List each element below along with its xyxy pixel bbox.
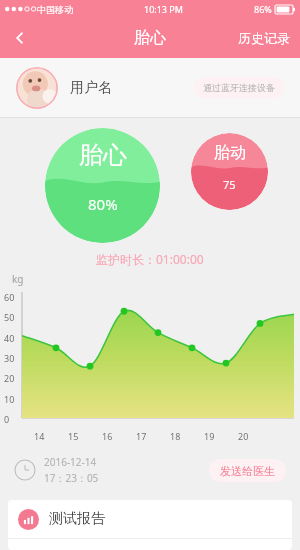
button[interactable]: Back <box>0 18 40 58</box>
staticText: 20 <box>4 372 15 384</box>
staticText: 发送给医生 <box>220 464 275 478</box>
staticText: 监护时长：01:00:00 <box>96 251 204 267</box>
button[interactable]: 测试报告 <box>8 500 292 550</box>
staticText: 胎动 <box>214 143 246 163</box>
button[interactable]: 胎动 75 <box>191 133 268 210</box>
staticText: 19 <box>204 430 215 442</box>
staticText: 17 <box>136 430 147 442</box>
staticText: 通过蓝牙连接设备 <box>203 82 275 93</box>
button[interactable]: 历史记录 <box>228 20 300 56</box>
staticText: 历史记录 <box>238 30 290 46</box>
staticText: 测试报告 <box>49 510 105 528</box>
button[interactable]: 发送给医生 <box>209 459 286 482</box>
staticText: 16 <box>102 430 113 442</box>
staticText: 40 <box>4 332 15 344</box>
staticText: 0 <box>4 413 10 425</box>
staticText: 10 <box>4 393 15 405</box>
staticText: 80% <box>88 194 118 214</box>
staticText: 30 <box>4 352 15 364</box>
staticText: 17：23：05 <box>44 471 99 485</box>
staticText: 20 <box>238 430 249 442</box>
staticText: 75 <box>223 177 236 192</box>
staticText: 15 <box>68 430 79 442</box>
staticText: 10:13 PM <box>144 3 183 15</box>
staticText: 用户名 <box>70 79 112 97</box>
staticText: 86% <box>254 3 272 15</box>
staticText: 2016-12-14 <box>44 455 97 469</box>
staticText: 50 <box>4 311 15 323</box>
staticText: 14 <box>34 430 45 442</box>
staticText: 18 <box>170 430 181 442</box>
staticText: kg <box>12 272 24 286</box>
button[interactable]: 胎心 80% <box>45 128 160 243</box>
staticText: 中国移动 <box>37 4 73 15</box>
staticText: 胎心 <box>134 28 166 48</box>
staticText: 胎心 <box>79 140 127 170</box>
button[interactable]: Avatar <box>16 67 58 109</box>
button[interactable]: 通过蓝牙连接设备 <box>194 77 284 98</box>
staticText: 60 <box>4 291 15 303</box>
